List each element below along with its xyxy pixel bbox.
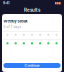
staticText: Weekly streak	[3, 19, 27, 23]
staticText: 5 of 7 days	[3, 25, 21, 29]
staticText: Continue	[24, 63, 39, 68]
staticText: Results	[24, 7, 40, 13]
button[interactable]: Continue	[3, 63, 61, 68]
staticText: ▮▮▮	[55, 1, 61, 5]
staticText: 9:41	[3, 1, 9, 5]
